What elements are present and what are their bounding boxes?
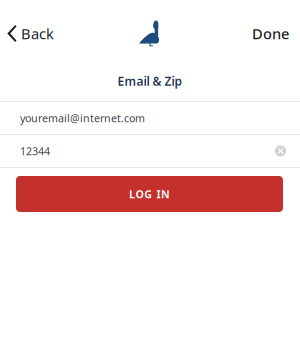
staticText: Email & Zip	[117, 73, 182, 89]
staticText: youremail@internet.com	[20, 111, 145, 125]
staticText: LOG IN	[129, 187, 170, 201]
button[interactable]: Clear text	[275, 145, 286, 156]
button[interactable]: Back	[0, 16, 62, 51]
staticText: 12344	[20, 144, 50, 158]
button[interactable]: LOG IN	[16, 176, 283, 212]
button[interactable]: Done	[240, 16, 300, 51]
staticText: Back	[21, 24, 54, 43]
staticText: Done	[252, 24, 289, 43]
